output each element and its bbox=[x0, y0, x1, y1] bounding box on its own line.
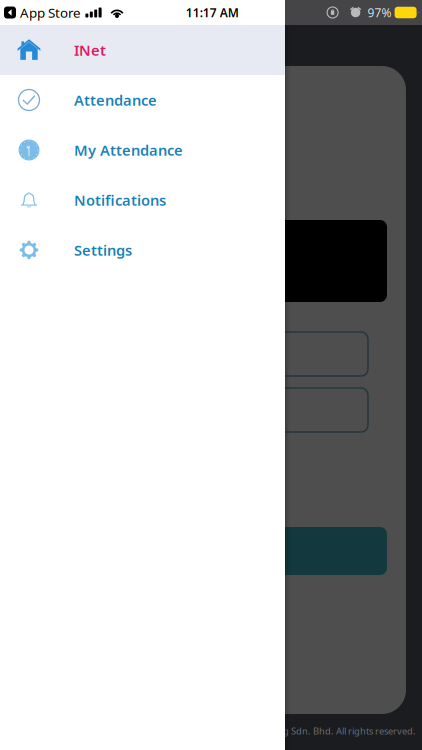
button[interactable]: My Attendance bbox=[0, 125, 285, 175]
staticText: 11:17 AM bbox=[186, 4, 239, 20]
staticText: Notifications bbox=[74, 190, 166, 210]
button[interactable]: Attendance bbox=[0, 75, 285, 125]
staticText: Copyright © 2021 Enfrasys Consulting Sdn… bbox=[126, 725, 416, 737]
staticText: INet bbox=[74, 40, 106, 60]
staticText: App Store bbox=[20, 4, 81, 21]
button[interactable]: Settings bbox=[0, 225, 285, 275]
staticText: Settings bbox=[74, 240, 132, 260]
button[interactable]: Notifications bbox=[0, 175, 285, 225]
staticText: 97% bbox=[368, 4, 392, 20]
button[interactable]: INet bbox=[0, 25, 285, 75]
staticText: Attendance bbox=[74, 90, 157, 110]
staticText: My Attendance bbox=[74, 140, 183, 160]
